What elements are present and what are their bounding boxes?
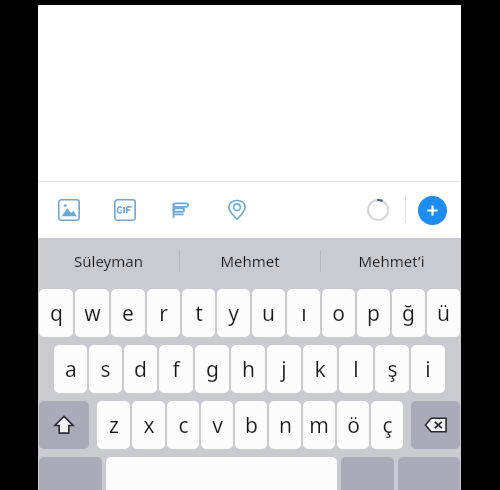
button[interactable]: x: [132, 401, 165, 449]
staticText: l: [353, 355, 359, 384]
staticText: ş: [387, 355, 398, 384]
button[interactable]: ğ: [392, 289, 425, 337]
button[interactable]: r: [147, 289, 180, 337]
button[interactable]: ü: [427, 289, 460, 337]
button[interactable]: s: [89, 345, 122, 393]
staticText: ğ: [402, 299, 415, 328]
button[interactable]: p: [357, 289, 390, 337]
button[interactable]: ç: [371, 401, 403, 449]
staticText: x: [143, 411, 155, 440]
button[interactable]: a: [54, 345, 87, 393]
button[interactable]: ö: [337, 401, 369, 449]
button[interactable]: t: [182, 289, 215, 337]
staticText: w: [84, 299, 101, 328]
button[interactable]: e: [111, 289, 145, 337]
staticText: ö: [347, 411, 360, 440]
staticText: u: [262, 299, 275, 328]
staticText: r: [159, 299, 168, 328]
button[interactable]: h: [231, 345, 265, 393]
staticText: Mehmet’i: [358, 251, 425, 271]
staticText: t: [195, 299, 203, 328]
staticText: o: [332, 299, 345, 328]
button[interactable]: b: [235, 401, 267, 449]
button[interactable]: k: [303, 345, 337, 393]
button[interactable]: g: [195, 345, 229, 393]
button[interactable]: m: [303, 401, 335, 449]
button[interactable]: n: [269, 401, 301, 449]
button[interactable]: ı: [287, 289, 320, 337]
staticText: d: [134, 355, 147, 384]
button[interactable]: i: [411, 345, 445, 393]
button[interactable]: Süleyman: [38, 238, 179, 283]
button[interactable]: q: [39, 289, 73, 337]
button[interactable]: y: [217, 289, 250, 337]
staticText: k: [314, 355, 326, 384]
staticText: m: [309, 411, 329, 440]
button[interactable]: z: [97, 401, 130, 449]
staticText: v: [212, 411, 223, 440]
button[interactable]: d: [124, 345, 157, 393]
staticText: y: [228, 299, 239, 328]
button[interactable]: Location: [220, 193, 254, 227]
button[interactable]: o: [322, 289, 355, 337]
button[interactable]: Backspace: [411, 401, 460, 449]
staticText: s: [100, 355, 111, 384]
staticText: Süleyman: [74, 251, 143, 271]
staticText: b: [245, 411, 258, 440]
staticText: e: [122, 299, 134, 328]
button[interactable]: [361, 193, 395, 227]
staticText: a: [65, 355, 77, 384]
staticText: n: [279, 411, 292, 440]
staticText: z: [109, 411, 119, 440]
button[interactable]: j: [267, 345, 301, 393]
staticText: f: [172, 355, 180, 384]
button[interactable]: u: [252, 289, 285, 337]
button[interactable]: l: [339, 345, 373, 393]
staticText: ü: [437, 299, 450, 328]
staticText: j: [281, 355, 287, 384]
button[interactable]: f: [159, 345, 193, 393]
staticText: g: [206, 355, 219, 384]
button[interactable]: c: [167, 401, 199, 449]
button[interactable]: ş: [375, 345, 409, 393]
staticText: i: [425, 355, 431, 384]
staticText: Mehmet: [220, 251, 280, 271]
staticText: p: [367, 299, 380, 328]
staticText: q: [50, 299, 63, 328]
button[interactable]: Photo: [52, 193, 86, 227]
button[interactable]: v: [201, 401, 233, 449]
staticText: ı: [301, 299, 307, 328]
button[interactable]: w: [75, 289, 109, 337]
button[interactable]: Send: [418, 196, 447, 225]
button[interactable]: Poll: [164, 193, 198, 227]
staticText: ç: [382, 411, 393, 440]
staticText: c: [178, 411, 189, 440]
staticText: h: [242, 355, 255, 384]
button[interactable]: Mehmet’i: [321, 238, 461, 283]
button[interactable]: GIF: [108, 193, 142, 227]
button[interactable]: Mehmet: [180, 238, 320, 283]
button[interactable]: Shift: [39, 401, 89, 449]
